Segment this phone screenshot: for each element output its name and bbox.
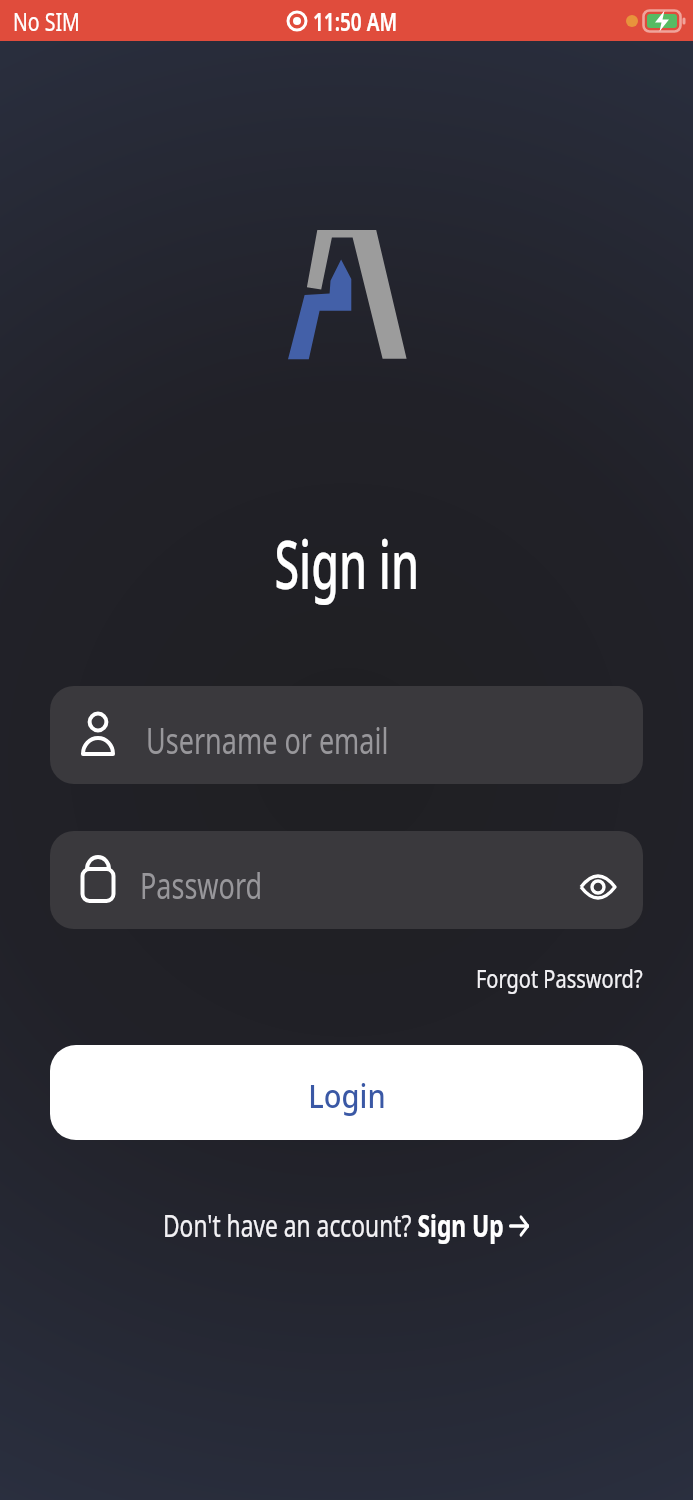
button[interactable]: Password bbox=[50, 831, 643, 929]
button[interactable]: Login bbox=[50, 1045, 643, 1140]
staticText: No SIM bbox=[13, 4, 80, 38]
staticText: Forgot Password? bbox=[476, 960, 643, 995]
staticText: Password bbox=[140, 861, 262, 910]
button[interactable]: Forgot Password? bbox=[426, 960, 643, 995]
staticText: Login bbox=[308, 1073, 386, 1118]
button[interactable] bbox=[580, 869, 616, 905]
staticText: Sign in bbox=[274, 516, 420, 609]
staticText: 11:50 AM bbox=[313, 4, 397, 38]
staticText: Don't have an account? bbox=[163, 1205, 418, 1246]
staticText: Username or email bbox=[146, 716, 389, 765]
button[interactable]: Don't have an account? bbox=[163, 1205, 530, 1246]
staticText: Sign Up bbox=[418, 1205, 504, 1246]
button[interactable]: Username or email bbox=[50, 686, 643, 784]
